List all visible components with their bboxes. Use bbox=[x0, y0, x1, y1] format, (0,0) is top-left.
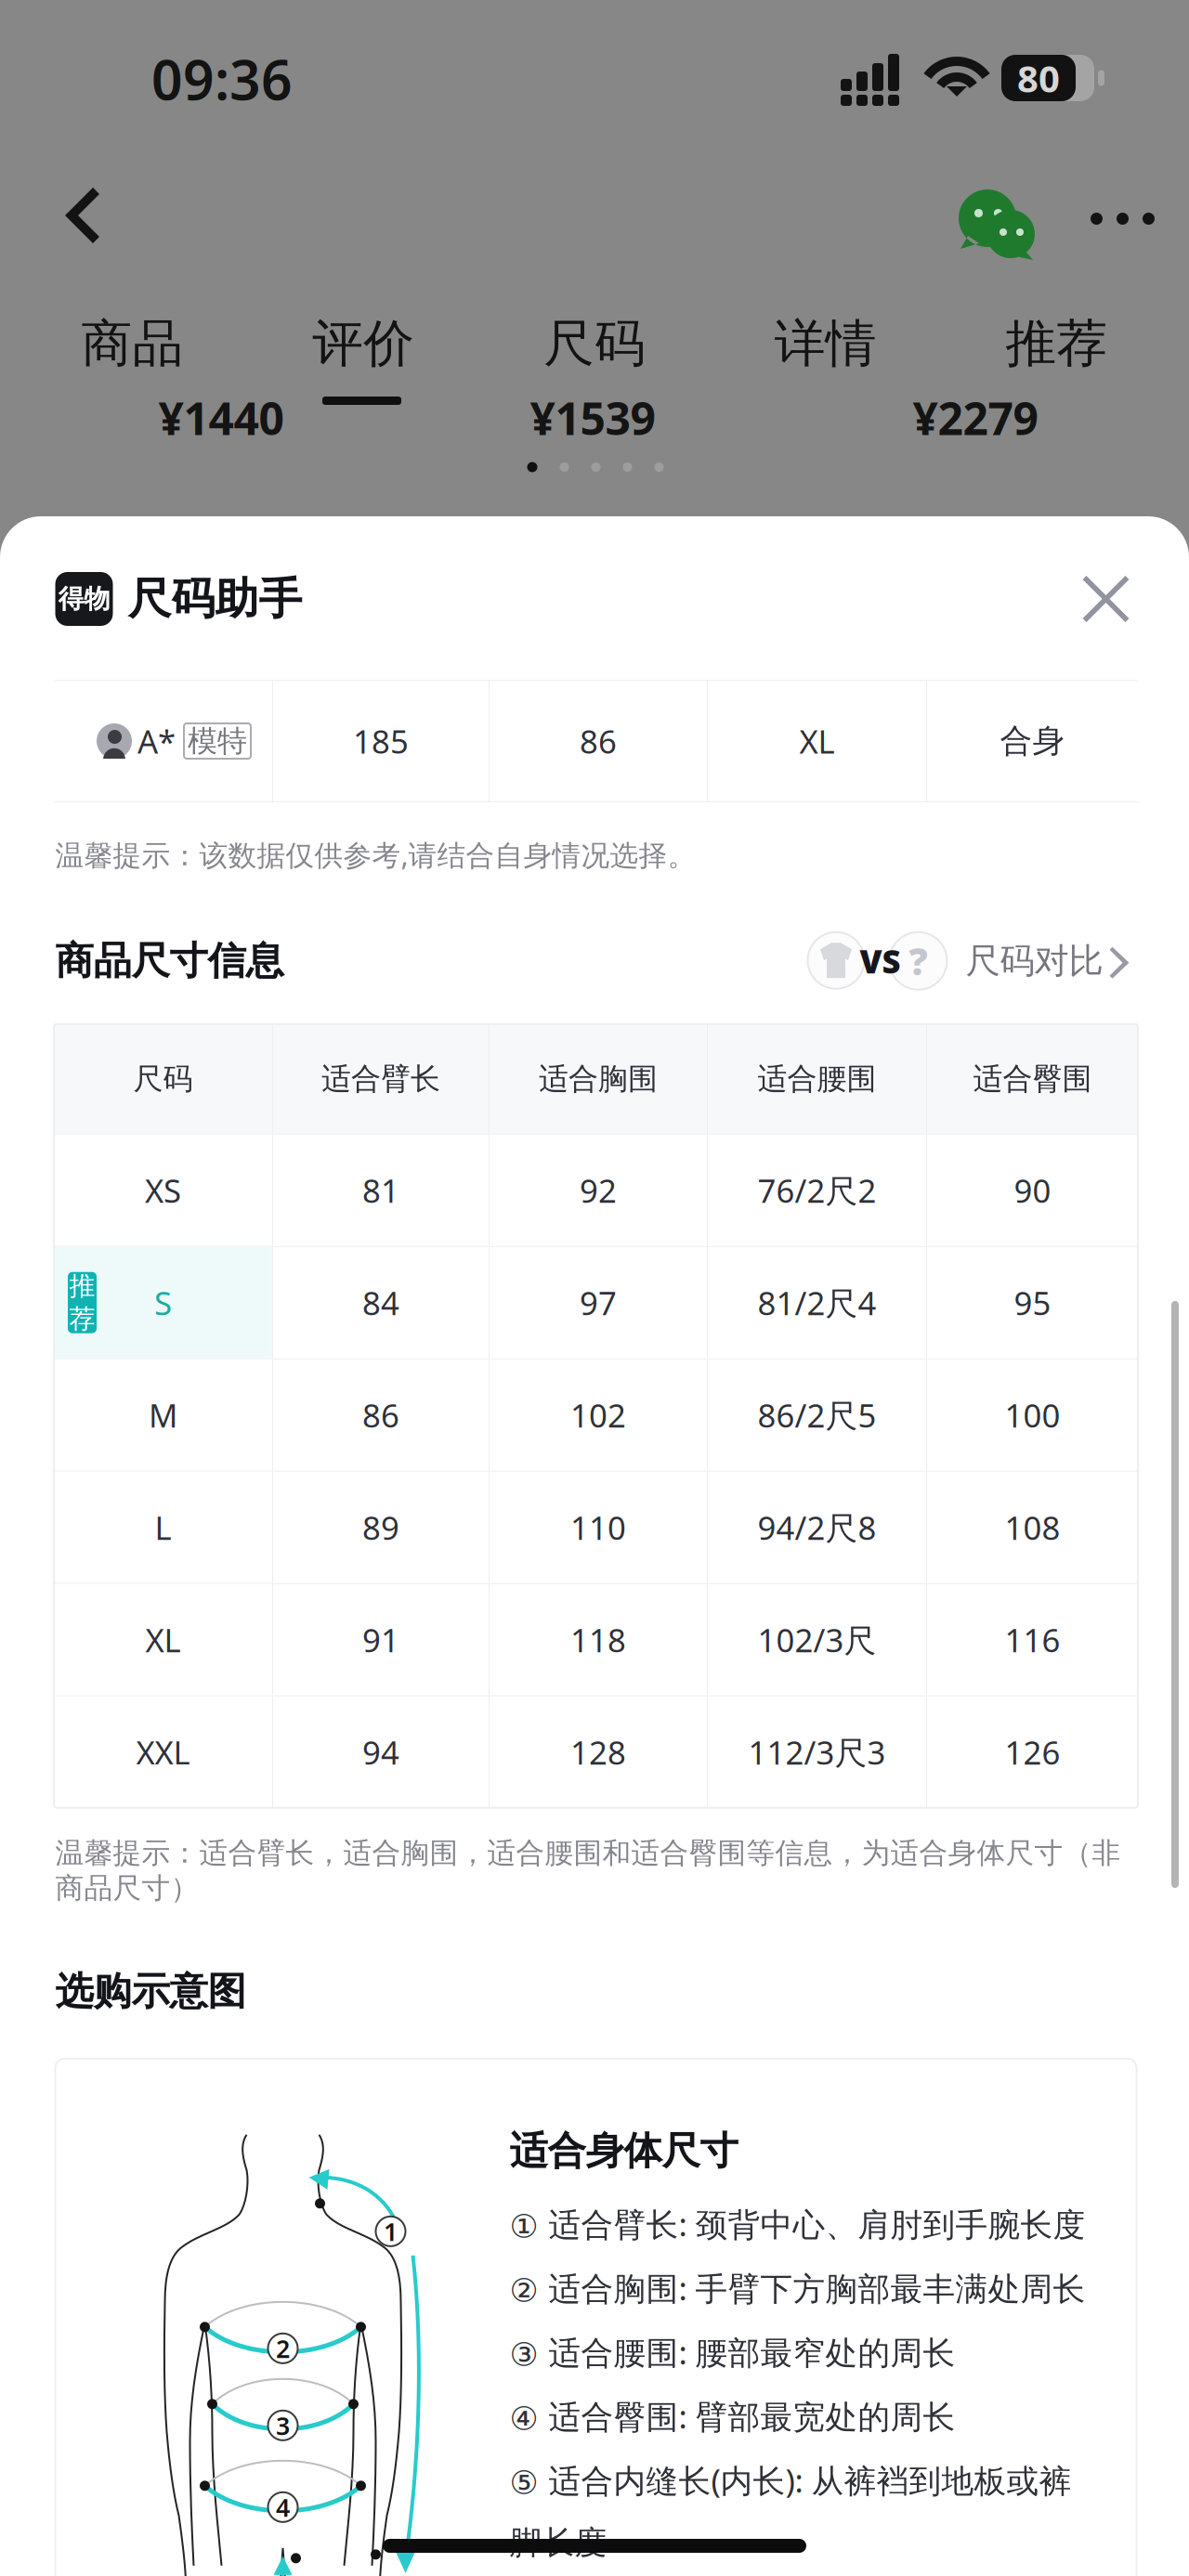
staticText: 商品 bbox=[81, 312, 183, 375]
staticText: ⑤ 适合内缝长(内长): 从裤裆到地板或裤 bbox=[510, 2459, 1071, 2502]
staticText: 推 bbox=[69, 1270, 95, 1302]
staticText: 92 bbox=[580, 1169, 617, 1212]
staticText: 评价 bbox=[312, 312, 414, 375]
staticText: 116 bbox=[1005, 1618, 1060, 1661]
staticText: ¥1539 bbox=[530, 388, 655, 447]
staticText: 详情 bbox=[775, 312, 877, 375]
staticText: 商品尺寸信息 bbox=[55, 937, 284, 984]
staticText: 09:36 bbox=[151, 43, 293, 115]
staticText: 3 bbox=[276, 2409, 290, 2442]
staticText: M bbox=[149, 1394, 177, 1436]
staticText: 86 bbox=[362, 1394, 399, 1436]
staticText: 推荐 bbox=[1006, 312, 1108, 375]
staticText: 110 bbox=[570, 1506, 626, 1549]
staticText: 温馨提示：该数据仅供参考,请结合自身情况选择。 bbox=[55, 836, 696, 874]
staticText: ② 适合胸围: 手臂下方胸部最丰满处周长 bbox=[510, 2267, 1085, 2309]
staticText: 126 bbox=[1005, 1731, 1060, 1773]
staticText: 81 bbox=[362, 1169, 399, 1212]
staticText: 4 bbox=[276, 2491, 290, 2524]
staticText: XS bbox=[145, 1169, 181, 1212]
staticText: 荐 bbox=[69, 1303, 95, 1335]
staticText: ¥1440 bbox=[158, 388, 284, 447]
staticText: 94 bbox=[362, 1731, 399, 1773]
staticText: 适合胸围 bbox=[539, 1061, 658, 1097]
staticText: 合身 bbox=[1000, 721, 1065, 761]
staticText: 适合臀围 bbox=[973, 1061, 1092, 1097]
staticText: 86/2尺5 bbox=[758, 1394, 876, 1436]
button[interactable]: Share to WeChat bbox=[944, 175, 1053, 279]
staticText: 100 bbox=[1005, 1394, 1060, 1436]
button[interactable]: ? bbox=[808, 926, 1137, 995]
staticText: 112/3尺3 bbox=[748, 1731, 886, 1773]
staticText: 76/2尺2 bbox=[758, 1169, 876, 1212]
staticText: 选购示意图 bbox=[55, 1968, 246, 2015]
staticText: A* bbox=[137, 720, 176, 762]
button[interactable]: More bbox=[1070, 192, 1175, 245]
staticText: S bbox=[154, 1281, 172, 1324]
staticText: 118 bbox=[570, 1618, 626, 1661]
staticText: 86 bbox=[580, 720, 617, 762]
staticText: 91 bbox=[362, 1618, 399, 1661]
staticText: 102 bbox=[570, 1394, 626, 1436]
staticText: XL bbox=[799, 720, 835, 762]
staticText: 模特 bbox=[188, 723, 247, 759]
staticText: 尺码 bbox=[133, 1061, 193, 1097]
button[interactable]: Close bbox=[1060, 553, 1151, 644]
staticText: 尺码助手 bbox=[128, 572, 302, 626]
staticText: 128 bbox=[570, 1731, 626, 1773]
staticText: VS bbox=[860, 939, 901, 982]
staticText: ④ 适合臀围: 臂部最宽处的周长 bbox=[510, 2395, 955, 2437]
staticText: 102/3尺 bbox=[758, 1618, 876, 1661]
staticText: 温馨提示：适合臂长，适合胸围，适合腰围和适合臀围等信息，为适合身体尺寸（非商品尺… bbox=[55, 1836, 1121, 1906]
button[interactable]: Back bbox=[35, 160, 130, 271]
staticText: XXL bbox=[136, 1731, 190, 1773]
staticText: ① 适合臂长: 颈背中心、肩肘到手腕长度 bbox=[510, 2203, 1085, 2245]
staticText: 适合身体尺寸 bbox=[510, 2127, 738, 2174]
staticText: 95 bbox=[1014, 1281, 1051, 1324]
staticText: ¥2279 bbox=[913, 388, 1038, 447]
staticText: 80 bbox=[1017, 53, 1060, 103]
staticText: XL bbox=[145, 1618, 181, 1661]
staticText: 97 bbox=[580, 1281, 617, 1324]
staticText: ③ 适合腰围: 腰部最窄处的周长 bbox=[510, 2331, 955, 2373]
staticText: 94/2尺8 bbox=[758, 1506, 876, 1549]
staticText: 185 bbox=[353, 720, 409, 762]
staticText: 尺码对比 bbox=[966, 940, 1103, 982]
staticText: 1 bbox=[384, 2215, 398, 2248]
staticText: 适合臂长 bbox=[321, 1061, 440, 1097]
staticText: 适合腰围 bbox=[758, 1061, 876, 1097]
staticText: 81/2尺4 bbox=[758, 1281, 876, 1324]
staticText: 尺码 bbox=[543, 312, 646, 375]
staticText: ? bbox=[909, 936, 928, 986]
staticText: 84 bbox=[362, 1281, 399, 1324]
staticText: 90 bbox=[1014, 1169, 1051, 1212]
staticText: 2 bbox=[276, 2332, 290, 2365]
staticText: 脚长度 bbox=[510, 2523, 607, 2562]
staticText: L bbox=[155, 1506, 171, 1549]
staticText: 108 bbox=[1005, 1506, 1060, 1549]
staticText: 得物 bbox=[58, 583, 110, 615]
staticText: 89 bbox=[362, 1506, 399, 1549]
